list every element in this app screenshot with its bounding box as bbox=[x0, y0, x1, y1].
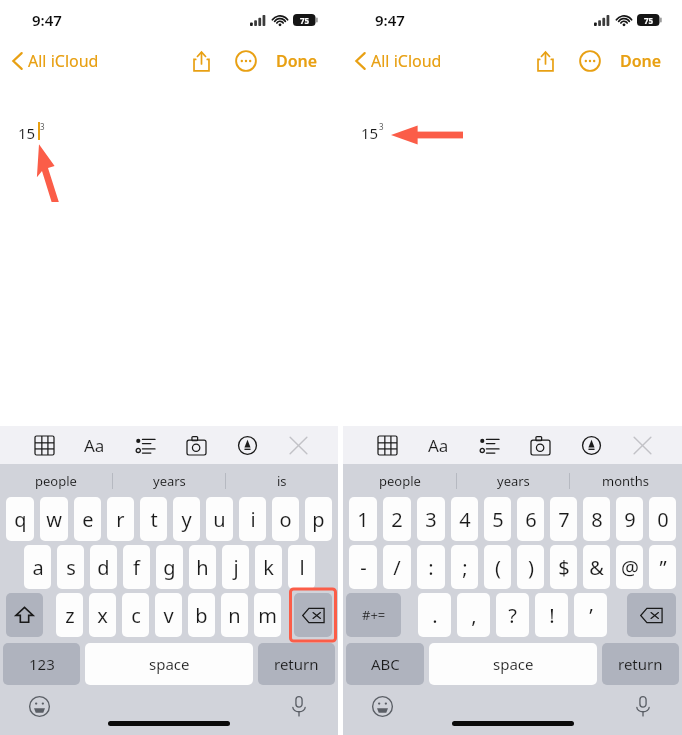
button[interactable]: - bbox=[349, 545, 377, 589]
button[interactable]: 4 bbox=[451, 497, 478, 541]
button[interactable]: ( bbox=[484, 545, 511, 589]
button[interactable]: o bbox=[272, 497, 299, 541]
button[interactable]: : bbox=[417, 545, 445, 589]
button[interactable]: 123 bbox=[3, 643, 80, 685]
button[interactable]: 6 bbox=[517, 497, 544, 541]
staticText: space bbox=[493, 654, 534, 674]
staticText: 3 bbox=[379, 121, 384, 132]
button[interactable]: x bbox=[89, 593, 116, 637]
button[interactable]: l bbox=[288, 545, 315, 589]
button[interactable]: ! bbox=[535, 593, 568, 637]
button[interactable]: $ bbox=[550, 545, 577, 589]
button[interactable]: n bbox=[221, 593, 248, 637]
button[interactable]: Done bbox=[272, 44, 322, 78]
button[interactable]: people bbox=[343, 464, 456, 497]
button[interactable]: Backspace bbox=[294, 593, 332, 637]
button[interactable]: e bbox=[74, 497, 101, 541]
button[interactable]: 5 bbox=[484, 497, 511, 541]
button[interactable]: t bbox=[140, 497, 167, 541]
button[interactable]: All iCloud bbox=[351, 46, 446, 76]
button[interactable]: Markup bbox=[229, 427, 265, 463]
button[interactable]: Done bbox=[616, 44, 666, 78]
staticText: u bbox=[213, 506, 226, 533]
button[interactable]: k bbox=[255, 545, 282, 589]
button[interactable]: s bbox=[57, 545, 84, 589]
button[interactable]: return bbox=[602, 643, 679, 685]
button[interactable]: i bbox=[239, 497, 266, 541]
button[interactable]: u bbox=[206, 497, 233, 541]
button[interactable]: ’ bbox=[574, 593, 607, 637]
button[interactable]: Aa bbox=[420, 427, 456, 463]
button[interactable]: Share bbox=[184, 44, 218, 78]
button[interactable]: ) bbox=[517, 545, 544, 589]
button[interactable]: Emoji bbox=[367, 691, 397, 721]
button[interactable]: d bbox=[90, 545, 117, 589]
button[interactable]: 9 bbox=[616, 497, 643, 541]
button[interactable]: j bbox=[222, 545, 249, 589]
button[interactable]: Table bbox=[26, 427, 62, 463]
button[interactable]: Backspace bbox=[627, 593, 676, 637]
button[interactable]: months bbox=[570, 464, 682, 497]
button[interactable]: #+= bbox=[346, 593, 401, 637]
button[interactable]: 8 bbox=[583, 497, 610, 541]
button[interactable]: v bbox=[155, 593, 182, 637]
button[interactable]: space bbox=[85, 643, 253, 685]
button[interactable]: Dictate bbox=[628, 691, 658, 721]
button[interactable]: 7 bbox=[550, 497, 577, 541]
button[interactable]: All iCloud bbox=[8, 46, 103, 76]
button[interactable]: space bbox=[429, 643, 597, 685]
button[interactable]: Markup bbox=[573, 427, 609, 463]
staticText: , bbox=[471, 602, 477, 629]
button[interactable]: p bbox=[305, 497, 332, 541]
button[interactable]: return bbox=[258, 643, 335, 685]
button[interactable]: More options bbox=[573, 44, 607, 78]
button[interactable]: . bbox=[418, 593, 451, 637]
button[interactable]: ” bbox=[649, 545, 676, 589]
button[interactable]: Close bbox=[624, 427, 660, 463]
button[interactable]: Share bbox=[528, 44, 562, 78]
button[interactable]: Emoji bbox=[24, 691, 54, 721]
button[interactable]: Checklist bbox=[471, 427, 507, 463]
staticText: All iCloud bbox=[28, 50, 99, 72]
button[interactable]: Checklist bbox=[127, 427, 163, 463]
button[interactable]: q bbox=[6, 497, 34, 541]
button[interactable]: & bbox=[583, 545, 610, 589]
button[interactable]: r bbox=[107, 497, 134, 541]
button[interactable]: c bbox=[122, 593, 149, 637]
button[interactable]: people bbox=[0, 464, 112, 497]
staticText: f bbox=[133, 554, 140, 581]
button[interactable]: ; bbox=[451, 545, 478, 589]
button[interactable]: m bbox=[254, 593, 281, 637]
button[interactable]: Table bbox=[369, 427, 405, 463]
button[interactable]: Dictate bbox=[284, 691, 314, 721]
button[interactable]: 3 bbox=[417, 497, 445, 541]
button[interactable]: 0 bbox=[649, 497, 676, 541]
button[interactable]: f bbox=[123, 545, 150, 589]
button[interactable]: years bbox=[113, 464, 225, 497]
staticText: s bbox=[66, 554, 76, 581]
button[interactable]: z bbox=[56, 593, 83, 637]
button[interactable]: h bbox=[189, 545, 216, 589]
button[interactable]: Aa bbox=[76, 427, 112, 463]
staticText: Aa bbox=[428, 434, 449, 457]
button[interactable]: 1 bbox=[349, 497, 377, 541]
button[interactable]: Shift bbox=[6, 593, 43, 637]
button[interactable]: 2 bbox=[383, 497, 411, 541]
button[interactable]: ABC bbox=[346, 643, 424, 685]
button[interactable]: Camera bbox=[178, 427, 214, 463]
button[interactable]: w bbox=[40, 497, 68, 541]
button[interactable]: a bbox=[24, 545, 51, 589]
button[interactable]: @ bbox=[616, 545, 643, 589]
button[interactable]: More options bbox=[229, 44, 263, 78]
button[interactable]: is bbox=[226, 464, 338, 497]
button[interactable]: years bbox=[457, 464, 569, 497]
button[interactable]: ? bbox=[496, 593, 529, 637]
button[interactable]: , bbox=[457, 593, 490, 637]
button[interactable]: Camera bbox=[522, 427, 558, 463]
button[interactable]: g bbox=[156, 545, 183, 589]
button[interactable]: / bbox=[383, 545, 411, 589]
staticText: 0 bbox=[657, 506, 669, 533]
button[interactable]: y bbox=[173, 497, 200, 541]
button[interactable]: Close bbox=[280, 427, 316, 463]
button[interactable]: b bbox=[188, 593, 215, 637]
